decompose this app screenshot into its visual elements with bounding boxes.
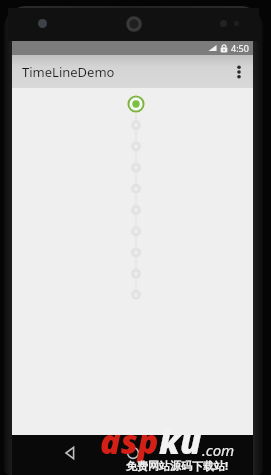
button[interactable]: Home	[124, 444, 142, 462]
button[interactable]: More options	[225, 55, 253, 88]
staticText: 4:50	[231, 42, 249, 54]
staticText: 免费网站源码下载站!	[126, 458, 229, 473]
staticText: asp	[100, 418, 159, 464]
staticText: TimeLineDemo	[22, 63, 115, 81]
staticText: ku	[159, 418, 202, 464]
button[interactable]: Back	[60, 443, 80, 463]
staticText: .com	[202, 440, 235, 460]
